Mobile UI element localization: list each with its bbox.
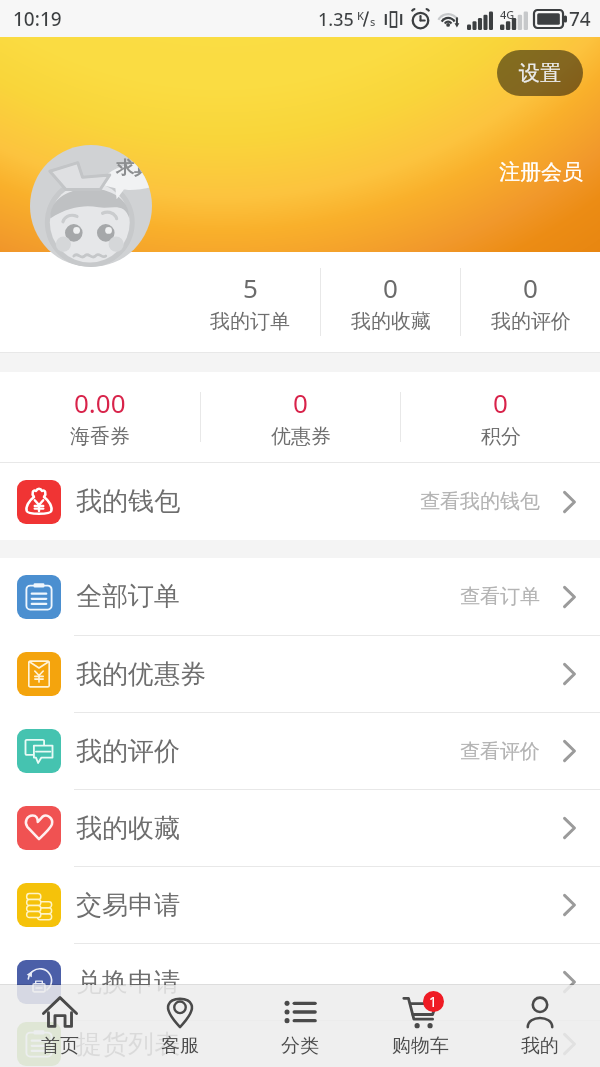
staticText: 兑换申请 — [76, 966, 180, 999]
staticText: 查看订单 — [460, 584, 540, 609]
staticText: 我的优惠券 — [76, 658, 206, 691]
staticText: 0 — [523, 270, 538, 305]
button[interactable]: 交易申请 — [0, 866, 600, 943]
staticText: 我的评价 — [76, 735, 180, 768]
staticText: 10:19 — [13, 6, 62, 32]
staticText: 0 — [383, 270, 398, 305]
staticText: 客服 — [161, 1034, 199, 1058]
staticText: 交易申请 — [76, 889, 180, 922]
button[interactable]: 我的收藏 — [0, 789, 600, 866]
staticText: 1 — [429, 992, 438, 1011]
button[interactable]: 我的钱包 — [0, 463, 600, 540]
staticText: 海香券 — [70, 424, 130, 449]
button[interactable]: 我的优惠券 — [0, 635, 600, 712]
staticText: 我的评价 — [491, 309, 571, 334]
button[interactable]: Profile avatar — [30, 145, 152, 267]
button[interactable]: 0.00 — [0, 385, 200, 449]
staticText: 1.35 — [318, 7, 354, 32]
staticText: 优惠券 — [271, 424, 331, 449]
staticText: 设置 — [519, 60, 561, 86]
button[interactable]: 1 — [360, 985, 480, 1067]
staticText: 我的 — [521, 1034, 559, 1058]
button[interactable]: 0 — [401, 385, 600, 449]
button[interactable]: 首页 — [0, 985, 120, 1067]
button[interactable]: 客服 — [120, 985, 240, 1067]
button[interactable]: 我的评价 — [0, 712, 600, 789]
staticText: 4G — [500, 7, 515, 22]
staticText: 我的订单 — [210, 309, 290, 334]
staticText: 查看评价 — [460, 739, 540, 764]
button[interactable]: 0 — [321, 270, 460, 334]
staticText: 0 — [493, 385, 508, 420]
staticText: 5 — [243, 270, 258, 305]
button[interactable]: 兑换申请 — [0, 943, 600, 1020]
button[interactable]: 我的 — [480, 985, 600, 1067]
button[interactable]: 0 — [461, 270, 600, 334]
button[interactable]: 提货列表 — [0, 1020, 600, 1067]
staticText: K — [357, 8, 364, 23]
staticText: 0 — [293, 385, 308, 420]
staticText: 求真 — [116, 157, 152, 180]
staticText: s — [370, 14, 376, 29]
staticText: 我的收藏 — [351, 309, 431, 334]
staticText: 0.00 — [74, 385, 126, 420]
staticText: 积分 — [481, 424, 521, 449]
button[interactable]: 分类 — [240, 985, 360, 1067]
staticText: 首页 — [41, 1034, 79, 1058]
button[interactable]: 5 — [180, 270, 320, 334]
staticText: 74 — [569, 6, 591, 32]
button[interactable]: 0 — [201, 385, 400, 449]
staticText: 分类 — [281, 1034, 319, 1058]
staticText: 查看我的钱包 — [420, 489, 540, 514]
staticText: 全部订单 — [76, 580, 180, 613]
staticText: 提货列表 — [76, 1028, 180, 1061]
button[interactable]: 设置 — [497, 50, 583, 96]
button[interactable]: 全部订单 — [0, 558, 600, 635]
staticText: 我的收藏 — [76, 812, 180, 845]
staticText: 购物车 — [392, 1034, 449, 1058]
button[interactable]: 注册会员 — [499, 159, 583, 185]
staticText: 我的钱包 — [76, 485, 180, 518]
